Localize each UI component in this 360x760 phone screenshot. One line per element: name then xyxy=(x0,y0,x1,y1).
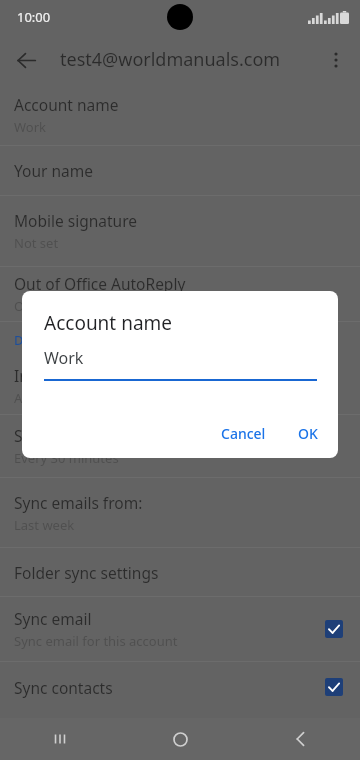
staticText: Sync email for this account xyxy=(14,632,178,650)
button[interactable]: Work xyxy=(44,347,317,381)
staticText: Sync contacts xyxy=(14,677,113,698)
staticText: Work xyxy=(14,118,47,136)
button[interactable]: Sync emails from: xyxy=(0,478,360,547)
button[interactable]: Mobile signature xyxy=(0,196,360,266)
staticText: Cancel xyxy=(221,424,266,443)
button[interactable]: Sync contacts xyxy=(0,662,360,712)
staticText: Last week xyxy=(14,516,75,534)
staticText: Off xyxy=(14,297,34,315)
staticText: Account server settings xyxy=(14,389,157,407)
staticText: Days xyxy=(14,331,45,349)
button[interactable]: Home xyxy=(120,718,240,760)
button[interactable]: Incoming settings xyxy=(0,358,360,414)
staticText: OK xyxy=(298,424,318,443)
staticText: Not set xyxy=(14,234,59,252)
button[interactable]: Recent apps xyxy=(0,718,120,760)
staticText: Mobile signature xyxy=(14,210,137,231)
staticText: Account name xyxy=(44,310,173,336)
staticText: Your name xyxy=(14,160,93,181)
button[interactable]: Your name xyxy=(0,146,360,195)
button[interactable]: Cancel xyxy=(209,415,278,452)
button[interactable]: Sync frequency xyxy=(0,415,360,477)
staticText: Sync frequency xyxy=(14,425,125,446)
button[interactable]: Back xyxy=(6,40,46,80)
staticText: Folder sync settings xyxy=(14,562,159,583)
button[interactable]: Sync contacts checkbox xyxy=(325,678,343,696)
button[interactable]: Sync email checkbox xyxy=(325,620,343,638)
button[interactable]: More options xyxy=(316,40,356,80)
button[interactable]: Account name xyxy=(0,85,360,145)
staticText: Incoming settings xyxy=(14,365,146,386)
button[interactable]: Days xyxy=(0,322,360,358)
button[interactable]: Folder sync settings xyxy=(0,548,360,596)
button[interactable]: Back xyxy=(240,718,360,760)
button[interactable]: Sync email xyxy=(0,597,360,661)
staticText: Sync email xyxy=(14,608,92,629)
button[interactable]: OK xyxy=(286,415,330,452)
staticText: 10:00 xyxy=(17,8,51,26)
staticText: Account name xyxy=(14,94,119,115)
staticText: Sync emails from: xyxy=(14,492,143,513)
staticText: Out of Office AutoReply xyxy=(14,273,186,294)
staticText: Work xyxy=(44,347,84,369)
staticText: test4@worldmanuals.com xyxy=(60,47,281,72)
button[interactable]: Out of Office AutoReply xyxy=(0,267,360,321)
staticText: Every 30 minutes xyxy=(14,449,119,467)
